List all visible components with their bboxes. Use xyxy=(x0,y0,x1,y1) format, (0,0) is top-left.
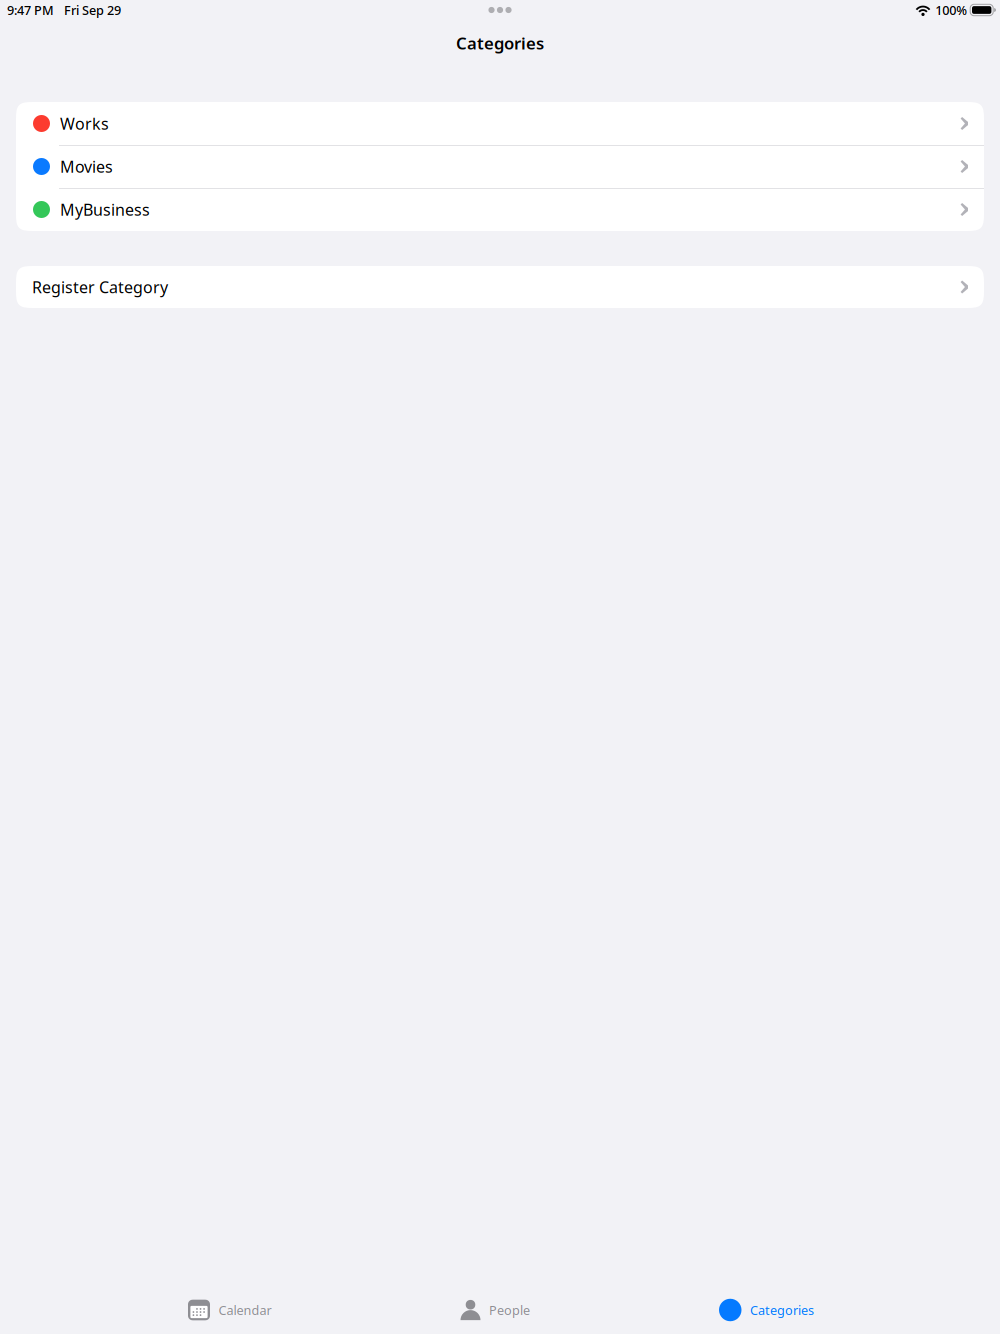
staticText: Movies xyxy=(60,156,113,177)
staticText: MyBusiness xyxy=(60,199,150,220)
button[interactable]: People xyxy=(460,1288,530,1332)
staticText: People xyxy=(489,1301,530,1319)
button[interactable]: Register Category xyxy=(16,266,984,308)
button[interactable]: Movies xyxy=(16,145,984,188)
staticText: Register Category xyxy=(32,276,168,298)
button[interactable]: MyBusiness xyxy=(16,188,984,231)
staticText: Categories xyxy=(456,32,544,54)
button[interactable]: Categories xyxy=(719,1288,814,1332)
staticText: 9:47 PM xyxy=(7,1,54,19)
staticText: Works xyxy=(60,113,109,134)
staticText: Fri Sep 29 xyxy=(64,1,121,19)
staticText: 100% xyxy=(935,1,967,19)
staticText: Categories xyxy=(750,1301,814,1319)
staticText: Calendar xyxy=(218,1301,271,1319)
button[interactable]: Calendar xyxy=(188,1288,271,1332)
button[interactable]: Works xyxy=(16,102,984,145)
